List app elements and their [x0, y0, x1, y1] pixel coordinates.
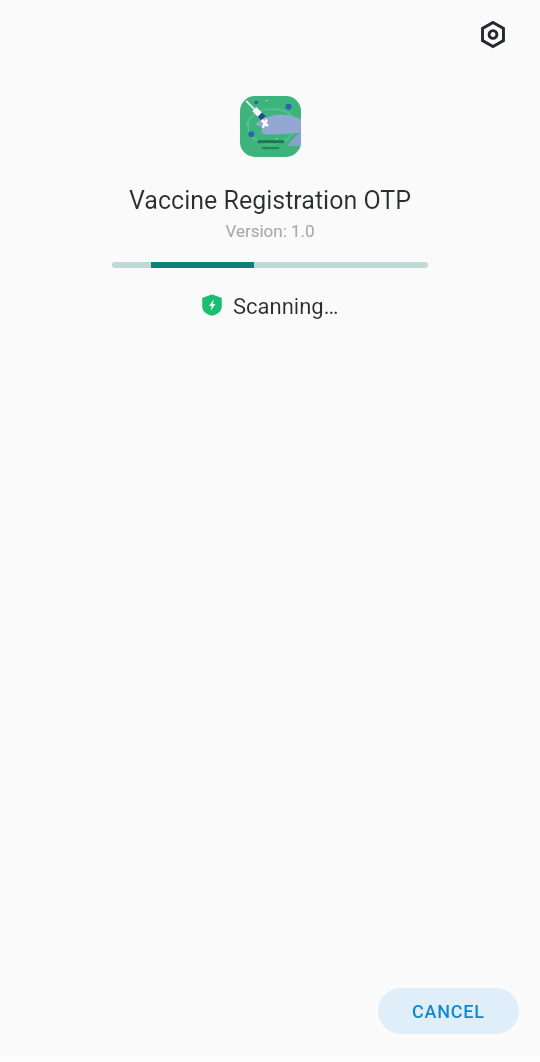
staticText: Version: 1.0	[225, 221, 315, 241]
button[interactable]: Settings	[470, 12, 515, 57]
staticText: Scanning…	[233, 294, 339, 320]
staticText: Vaccine Registration OTP	[129, 186, 411, 215]
button[interactable]: CANCEL	[378, 988, 519, 1034]
staticText: CANCEL	[412, 1001, 485, 1022]
